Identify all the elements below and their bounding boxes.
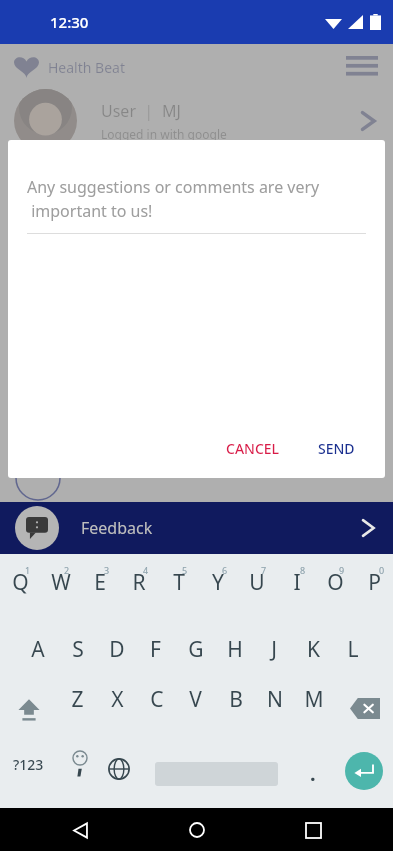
staticText: I — [293, 568, 301, 597]
staticText: ?123 — [13, 755, 44, 774]
staticText: Any suggestions or comments are very imp… — [27, 176, 320, 222]
button[interactable]: O — [316, 556, 355, 608]
button[interactable]: J — [254, 624, 293, 674]
button[interactable]: R — [119, 556, 158, 608]
staticText: 9 — [339, 564, 345, 576]
staticText: 0 — [379, 564, 385, 576]
button[interactable]: D — [97, 624, 136, 674]
button[interactable]: B — [216, 674, 255, 724]
button[interactable]: I — [277, 556, 316, 608]
staticText: L — [347, 635, 359, 664]
staticText: Logged in with google — [101, 126, 227, 142]
button[interactable]: V — [176, 674, 215, 724]
staticText: A — [31, 635, 45, 664]
button[interactable]: Y — [198, 556, 237, 608]
button[interactable]: Q — [1, 556, 40, 608]
staticText: Health Beat — [48, 58, 125, 77]
staticText: 5 — [182, 564, 188, 576]
button[interactable]: Menu — [345, 50, 379, 84]
button[interactable]: K — [294, 624, 333, 674]
staticText: User — [101, 100, 136, 122]
staticText: MJ — [162, 100, 181, 122]
staticText: C — [150, 685, 164, 714]
button[interactable]: T — [159, 556, 198, 608]
button[interactable]: A — [18, 624, 57, 674]
button[interactable]: C — [137, 674, 176, 724]
button[interactable]: X — [98, 674, 137, 724]
staticText: V — [189, 685, 202, 714]
staticText: 8 — [300, 564, 306, 576]
staticText: X — [111, 685, 124, 714]
button[interactable]: W — [41, 556, 80, 608]
staticText: Y — [212, 568, 224, 597]
button[interactable]: L — [333, 624, 372, 674]
staticText: 1 — [25, 564, 31, 576]
staticText: R — [132, 568, 146, 597]
staticText: N — [267, 685, 283, 714]
staticText: Z — [71, 685, 84, 714]
staticText: 2 — [64, 564, 70, 576]
staticText: T — [173, 568, 185, 597]
button[interactable]: . — [296, 754, 330, 792]
staticText: 3 — [104, 564, 110, 576]
staticText: SEND — [318, 439, 355, 458]
staticText: S — [72, 635, 84, 664]
staticText: 6 — [222, 564, 228, 576]
button[interactable]: Back — [63, 813, 97, 847]
button[interactable]: H — [215, 624, 254, 674]
staticText: 12:30 — [50, 12, 89, 32]
button[interactable]: Recent apps — [296, 813, 330, 847]
button[interactable]: G — [176, 624, 215, 674]
button[interactable]: E — [80, 556, 119, 608]
button[interactable]: M — [294, 674, 333, 724]
button[interactable]: N — [255, 674, 294, 724]
staticText: O — [327, 568, 344, 597]
staticText: Q — [12, 568, 29, 597]
staticText: . — [310, 760, 316, 787]
button[interactable]: Feedback — [0, 502, 393, 554]
staticText: F — [150, 635, 161, 664]
button[interactable]: Z — [58, 674, 97, 724]
staticText: D — [109, 635, 125, 664]
staticText: 7 — [261, 564, 267, 576]
button[interactable]: SEND — [306, 431, 367, 466]
staticText: U — [249, 568, 265, 597]
button[interactable]: Change language — [101, 753, 137, 785]
button[interactable]: Home — [180, 813, 214, 847]
staticText: | — [136, 100, 162, 122]
button[interactable]: P — [355, 556, 393, 608]
button[interactable]: S — [58, 624, 97, 674]
button[interactable]: ?123 — [4, 744, 52, 784]
staticText: P — [368, 568, 381, 597]
button[interactable]: Emoji — [62, 744, 98, 784]
staticText: 4 — [143, 564, 149, 576]
staticText: G — [188, 635, 204, 664]
staticText: H — [227, 635, 243, 664]
button[interactable]: CANCEL — [214, 431, 292, 466]
staticText: Feedback — [81, 517, 153, 539]
button[interactable]: U — [237, 556, 276, 608]
staticText: W — [51, 568, 71, 597]
staticText: J — [271, 635, 277, 664]
button[interactable]: Enter — [345, 752, 383, 790]
button[interactable]: Backspace — [344, 688, 386, 728]
button[interactable]: F — [136, 624, 175, 674]
button[interactable]: Shift — [8, 688, 50, 732]
staticText: B — [229, 685, 243, 714]
staticText: CANCEL — [226, 439, 280, 458]
staticText: E — [94, 568, 106, 597]
staticText: K — [307, 635, 320, 664]
staticText: M — [304, 685, 324, 714]
